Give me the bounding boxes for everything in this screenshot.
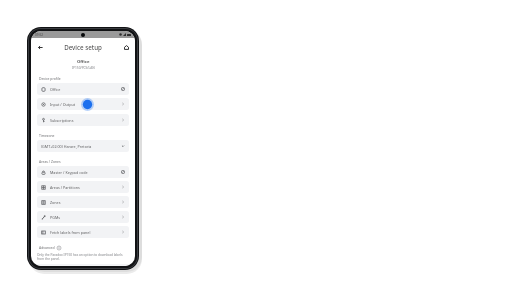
- button[interactable]: Back: [35, 42, 45, 52]
- staticText: Advanced: [39, 245, 55, 250]
- staticText: Device setup: [64, 43, 102, 51]
- staticText: Subscriptions: [50, 118, 121, 123]
- staticText: Fetch labels from panel: [50, 230, 121, 235]
- staticText: 09:52: [35, 33, 44, 37]
- staticText: Zones: [50, 200, 121, 205]
- staticText: Device profile: [39, 76, 61, 81]
- button[interactable]: Zones: [37, 196, 129, 208]
- button[interactable]: [37, 264, 129, 266]
- button[interactable]: Fetch labels from panel: [37, 226, 129, 238]
- staticText: Master / Keypad code: [50, 170, 121, 175]
- staticText: Areas / Partitions: [50, 185, 121, 190]
- staticText: Input / Output: [50, 102, 121, 107]
- staticText: PGMs: [50, 215, 121, 220]
- button[interactable]: Info: [57, 246, 61, 250]
- staticText: Areas / Zones: [39, 159, 61, 164]
- button[interactable]: Home: [121, 42, 131, 52]
- staticText: Timezone: [39, 133, 55, 138]
- button[interactable]: (GMT+02:00) Harare, Pretoria: [37, 140, 129, 152]
- staticText: IP150/PCS/LAN: [72, 66, 95, 70]
- button[interactable]: Office: [37, 83, 129, 95]
- button[interactable]: Master / Keypad code: [37, 166, 129, 178]
- button[interactable]: Subscriptions: [37, 114, 129, 126]
- staticText: Only the Paradox IP150 has an option to …: [37, 253, 129, 261]
- staticText: (GMT+02:00) Harare, Pretoria: [41, 144, 121, 149]
- staticText: Office: [50, 87, 121, 92]
- button[interactable]: Areas / Partitions: [37, 181, 129, 193]
- staticText: Office: [77, 59, 90, 65]
- button[interactable]: Input / Output: [37, 98, 129, 110]
- button[interactable]: PGMs: [37, 211, 129, 223]
